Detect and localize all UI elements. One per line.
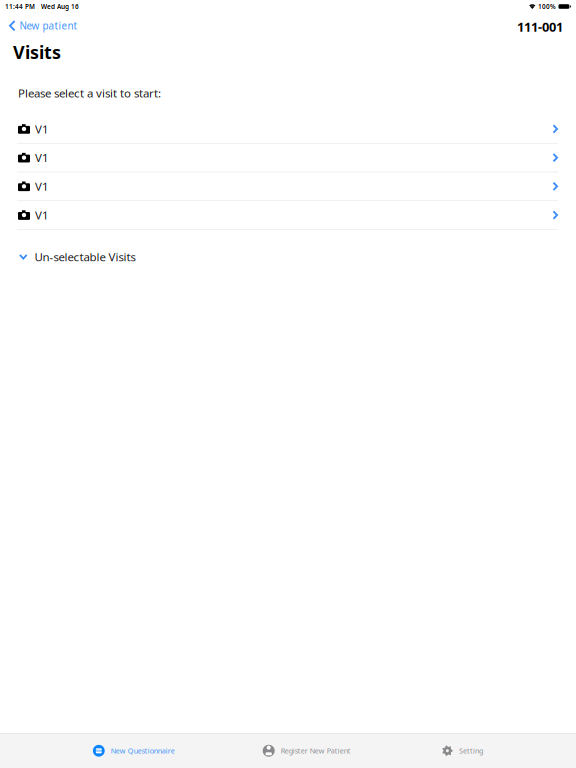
button[interactable]: Un-selectable Visits bbox=[0, 243, 576, 271]
button[interactable]: V1 bbox=[0, 144, 576, 172]
staticText: Visits bbox=[13, 40, 61, 64]
staticText: New Questionnaire bbox=[111, 746, 175, 756]
button[interactable]: Register New Patient bbox=[263, 734, 351, 768]
staticText: 111-001 bbox=[517, 18, 563, 35]
staticText: Setting bbox=[459, 746, 483, 756]
staticText: V1 bbox=[35, 150, 49, 165]
staticText: V1 bbox=[35, 178, 49, 194]
button[interactable]: V1 bbox=[0, 172, 576, 200]
staticText: Register New Patient bbox=[281, 746, 351, 756]
staticText: V1 bbox=[35, 207, 49, 223]
staticText: Wed Aug 16 bbox=[41, 2, 79, 11]
staticText: 11:44 PM bbox=[5, 2, 35, 11]
staticText: New patient bbox=[20, 19, 78, 32]
staticText: 100% bbox=[538, 2, 556, 11]
button[interactable]: New patient bbox=[0, 13, 87, 37]
staticText: V1 bbox=[35, 121, 49, 137]
button[interactable]: V1 bbox=[0, 115, 576, 143]
staticText: Please select a visit to start: bbox=[18, 85, 161, 101]
staticText: Un-selectable Visits bbox=[35, 249, 136, 264]
button[interactable]: Setting bbox=[442, 734, 483, 768]
button[interactable]: New Questionnaire bbox=[93, 734, 175, 768]
button[interactable]: V1 bbox=[0, 201, 576, 229]
